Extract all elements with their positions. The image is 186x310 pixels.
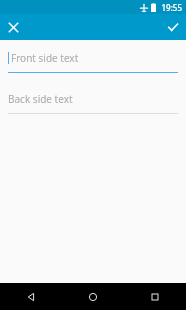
button[interactable]: Save	[160, 14, 186, 40]
button[interactable]: Close	[0, 14, 26, 40]
button[interactable]: Back side text	[8, 92, 178, 114]
button[interactable]: Recent apps	[124, 283, 186, 310]
staticText: 19:55	[161, 2, 182, 13]
staticText: Front side text	[11, 51, 79, 65]
staticText: Back side text	[8, 92, 73, 106]
button[interactable]: Front side text	[8, 51, 178, 73]
button[interactable]: Back	[0, 283, 62, 310]
button[interactable]: Home	[62, 283, 124, 310]
